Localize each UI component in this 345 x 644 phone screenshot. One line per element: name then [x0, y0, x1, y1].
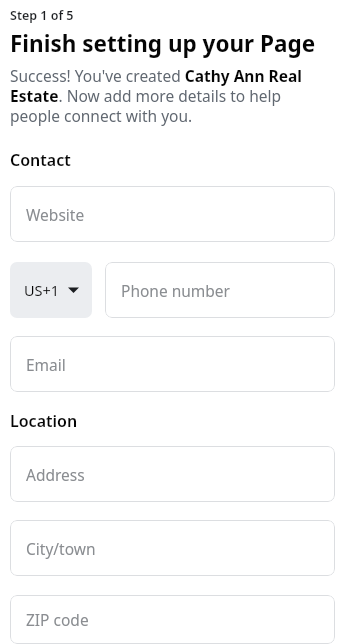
staticText: Location: [10, 410, 78, 432]
staticText: Phone number: [121, 280, 231, 301]
staticText: Address: [26, 464, 85, 485]
staticText: US+1: [24, 280, 60, 300]
button[interactable]: Address: [10, 446, 335, 502]
staticText: Email: [26, 354, 66, 375]
staticText: Website: [26, 204, 85, 225]
staticText: Contact: [10, 149, 71, 171]
staticText: ZIP code: [26, 609, 89, 630]
staticText: Finish setting up your Page: [10, 28, 316, 59]
staticText: City/town: [26, 538, 96, 559]
button[interactable]: City/town: [10, 520, 335, 576]
button[interactable]: Email: [10, 336, 335, 392]
button[interactable]: ZIP code: [10, 595, 335, 644]
button[interactable]: Phone number: [105, 262, 335, 318]
button[interactable]: Select country code: [10, 262, 92, 318]
staticText: Step 1 of 5: [10, 7, 74, 24]
button[interactable]: Website: [10, 186, 335, 242]
staticText: Success! You've created Cathy Ann Real E…: [10, 65, 335, 127]
